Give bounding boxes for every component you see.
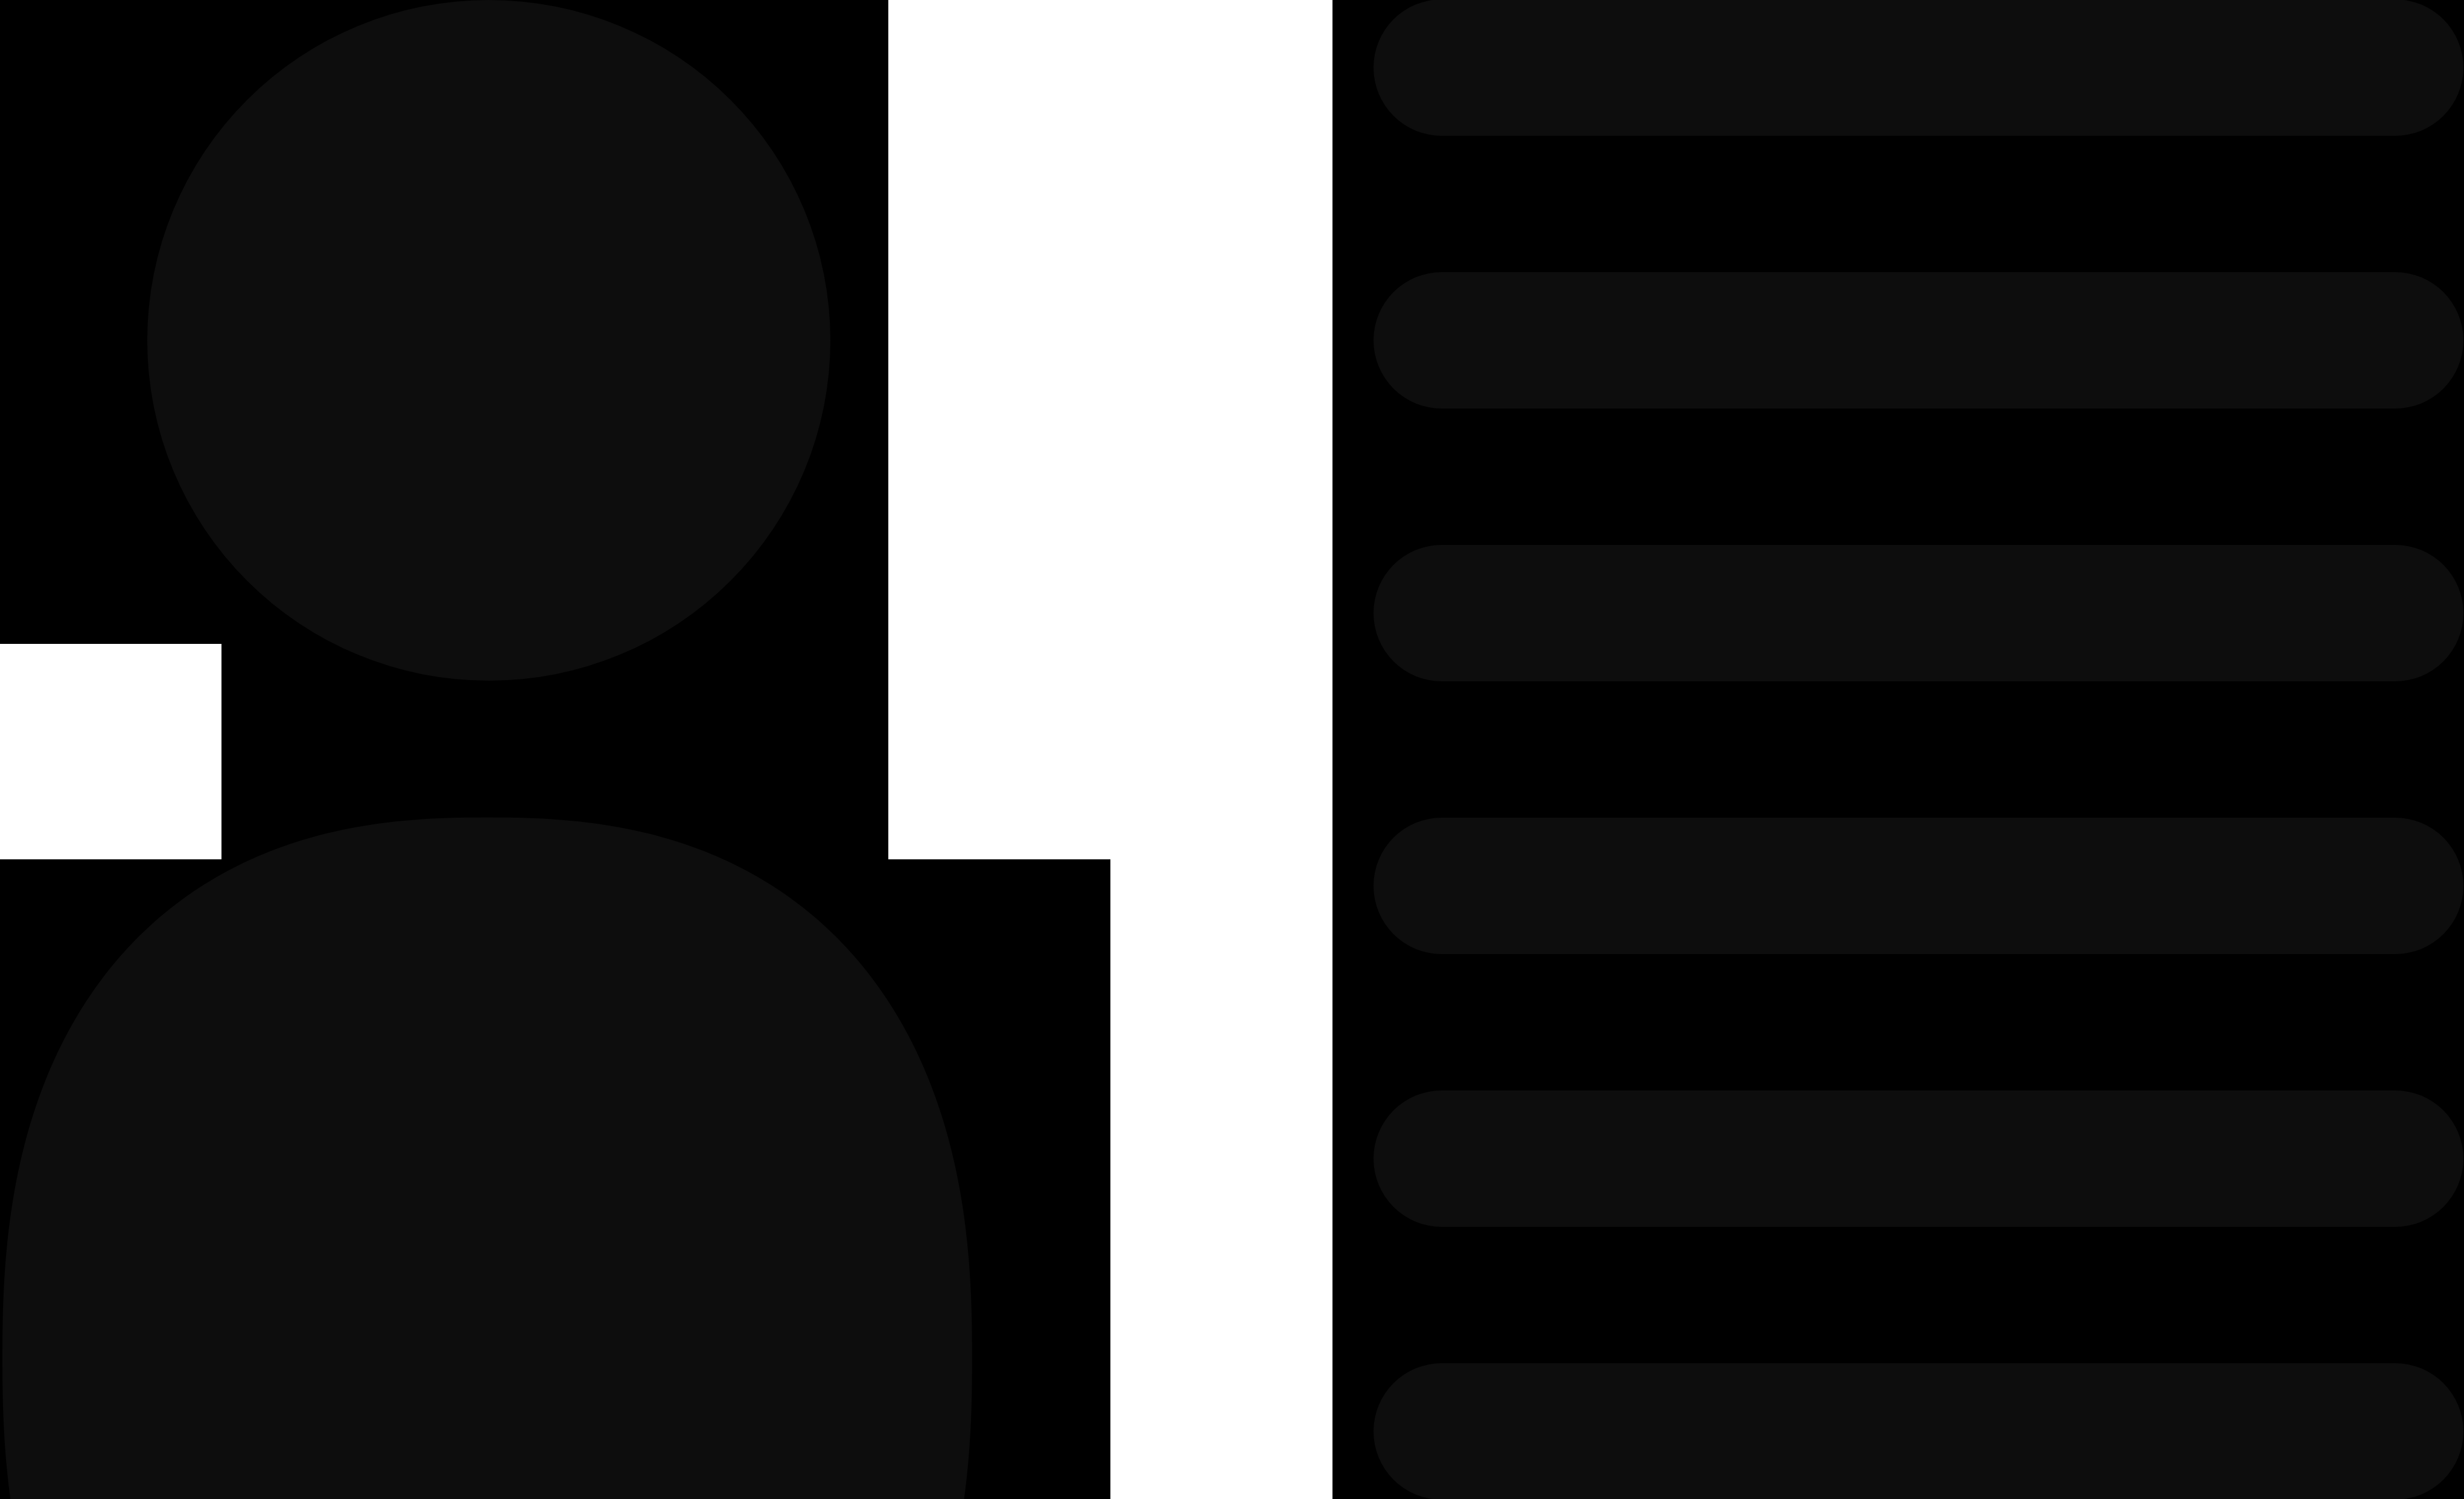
button[interactable]: Profile photo xyxy=(147,0,830,681)
